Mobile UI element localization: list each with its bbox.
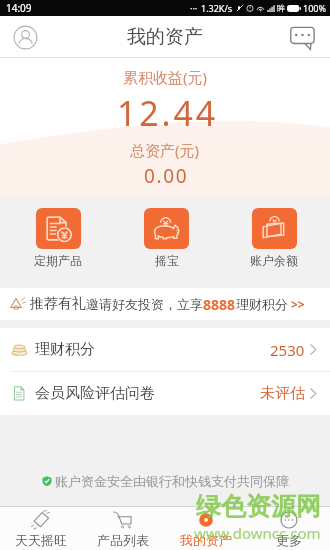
staticText: 更多 [276, 532, 302, 548]
staticText: 眸 [277, 3, 285, 13]
staticText: 定期产品 [34, 253, 82, 268]
staticText: 理财积分 [236, 296, 288, 312]
staticText: 100% [303, 2, 326, 14]
button[interactable]: 我的资产 [164, 507, 247, 550]
staticText: 摇宝 [155, 253, 179, 268]
staticText: www.downcc.com [194, 523, 321, 543]
button[interactable]: 账户余额 [250, 208, 298, 268]
staticText: 理财积分 [35, 340, 95, 359]
button[interactable]: 定期产品 [34, 208, 82, 268]
staticText: 0.00 [144, 163, 189, 189]
staticText: 我的资产 [127, 25, 203, 49]
button[interactable]: 理财积分 [0, 328, 330, 371]
staticText: 我的资产 [180, 532, 232, 548]
staticText: 账户资金安全由银行和快钱支付共同保障 [55, 473, 289, 489]
button[interactable]: 会员风险评估问卷 [0, 372, 330, 415]
staticText: >> [291, 296, 305, 312]
staticText: 2530 [270, 340, 305, 360]
staticText: 8888 [203, 295, 236, 314]
staticText: 天天摇旺 [15, 532, 67, 548]
staticText: 1.32K/s [201, 2, 233, 14]
button[interactable]: 推荐有礼 [0, 288, 330, 320]
staticText: 产品列表 [97, 532, 149, 548]
staticText: 推荐有礼 [30, 295, 86, 313]
button[interactable]: Messages [288, 22, 318, 52]
staticText: 未评估 [260, 384, 305, 403]
button[interactable]: 天天摇旺 [0, 507, 82, 550]
staticText: 14:09 [6, 1, 32, 15]
staticText: 邀请好友投资，立享 [86, 296, 203, 312]
button[interactable]: 摇宝 [144, 208, 189, 268]
staticText: 会员风险评估问卷 [35, 384, 155, 403]
staticText: 绿色资源网 [196, 491, 321, 522]
staticText: 累积收益(元) [123, 67, 208, 87]
staticText: 账户余额 [250, 253, 298, 268]
staticText: 12.44 [117, 90, 218, 136]
button[interactable]: 产品列表 [82, 507, 164, 550]
staticText: 总资产(元) [130, 140, 200, 160]
button[interactable]: Profile [10, 22, 40, 52]
staticText: ··· [190, 2, 198, 14]
button[interactable]: 更多 [247, 507, 330, 550]
